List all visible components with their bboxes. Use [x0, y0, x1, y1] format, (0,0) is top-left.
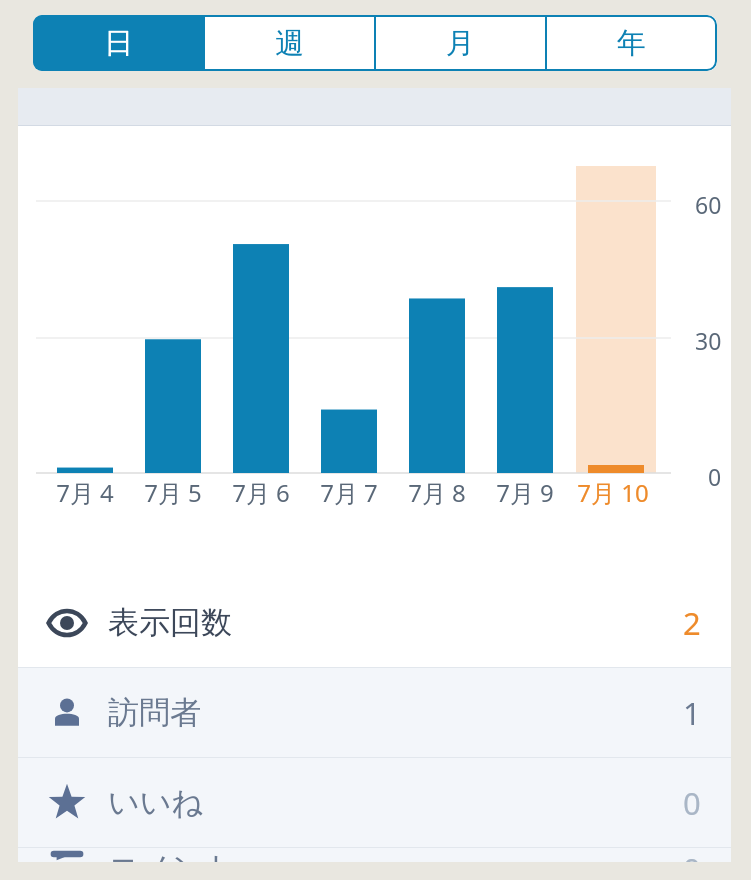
- button[interactable]: 週: [204, 15, 375, 71]
- staticText: 7月 4: [56, 476, 114, 509]
- button[interactable]: 月: [375, 15, 546, 71]
- staticText: 日: [104, 25, 133, 62]
- staticText: 0: [683, 848, 701, 862]
- button[interactable]: 年: [546, 15, 717, 71]
- staticText: 2: [683, 602, 701, 644]
- other: 訪問者: [47, 693, 87, 733]
- other: 表示回数: [47, 603, 87, 643]
- button[interactable]: 訪問者: [18, 668, 731, 757]
- staticText: 訪問者: [108, 693, 201, 732]
- button[interactable]: 表示回数: [18, 578, 731, 667]
- button[interactable]: 日: [33, 15, 204, 71]
- staticText: 1: [683, 692, 701, 734]
- staticText: 年: [617, 25, 646, 62]
- staticText: 7月 9: [496, 476, 554, 509]
- other: コメント: [47, 848, 87, 862]
- staticText: 7月 5: [144, 476, 202, 509]
- staticText: いいね: [108, 783, 204, 822]
- staticText: 表示回数: [108, 603, 232, 642]
- staticText: 30: [695, 325, 722, 356]
- other: いいね: [47, 783, 87, 823]
- staticText: 0: [683, 782, 701, 824]
- staticText: 週: [275, 25, 304, 62]
- button[interactable]: いいね: [18, 758, 731, 847]
- staticText: 7月 8: [408, 476, 466, 509]
- staticText: 0: [708, 461, 722, 492]
- staticText: 60: [695, 189, 722, 220]
- staticText: 7月 7: [320, 476, 378, 509]
- staticText: 月: [446, 25, 475, 62]
- staticText: コメント: [108, 848, 235, 862]
- staticText: 7月 6: [232, 476, 290, 509]
- button[interactable]: コメント: [18, 848, 731, 862]
- staticText: 7月 10: [577, 476, 649, 509]
